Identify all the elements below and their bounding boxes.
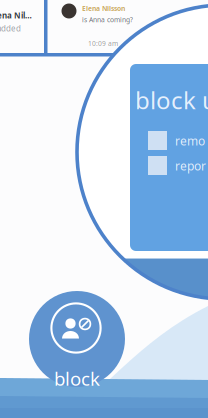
staticText: block u: [135, 84, 208, 116]
staticText: block: [54, 366, 100, 391]
staticText: Elena Nilsson: [82, 4, 125, 13]
staticText: repor: [175, 158, 206, 174]
staticText: is Anna coming?: [82, 15, 133, 24]
staticText: …added: [0, 23, 21, 34]
staticText: Elena Nil…: [0, 10, 32, 21]
button[interactable]: block: [0, 0, 208, 418]
staticText: 10:09 am: [88, 39, 118, 48]
staticText: remo: [175, 133, 205, 149]
